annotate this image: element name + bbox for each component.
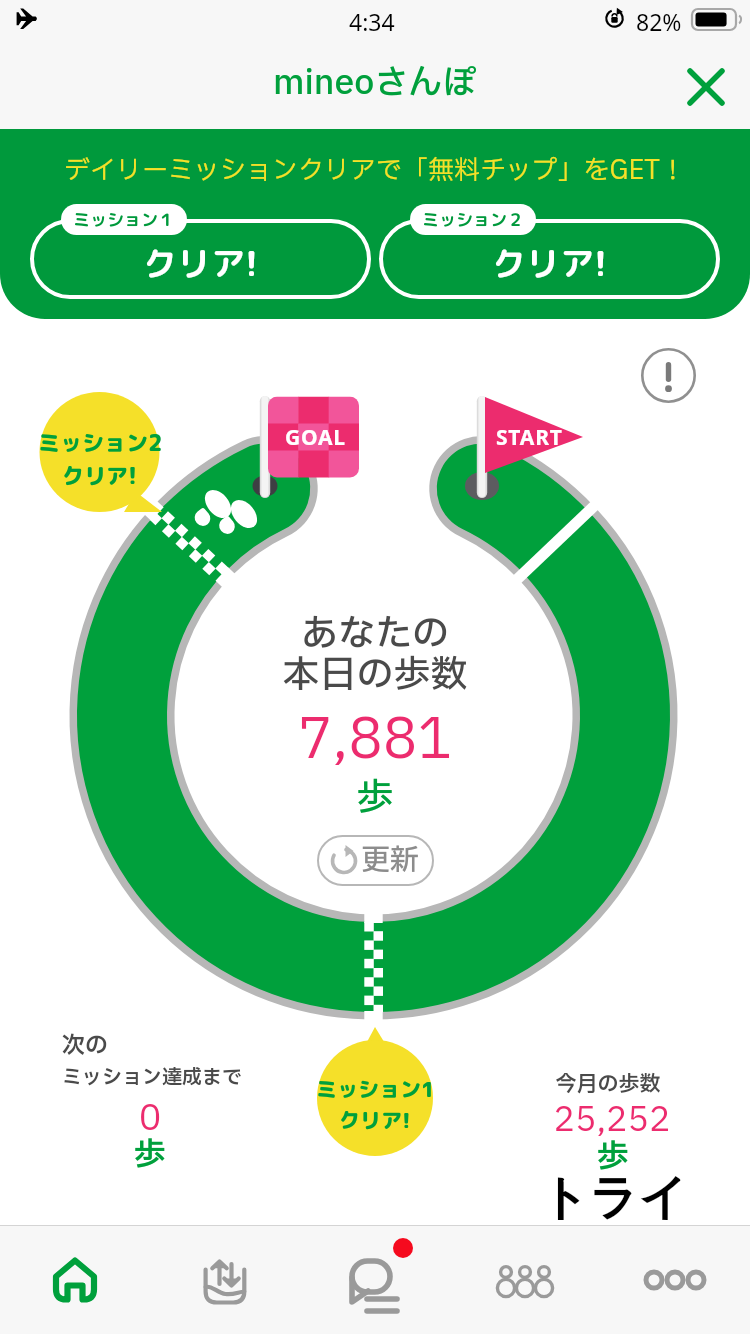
staticText: 本日の歩数	[0, 648, 750, 703]
staticText: クリア!	[492, 239, 607, 286]
staticText: クリア!	[62, 460, 138, 491]
staticText: 歩	[110, 1131, 190, 1179]
button[interactable]: Info	[641, 348, 696, 403]
staticText: ミッション2	[38, 427, 163, 458]
staticText: クリア!	[339, 1105, 411, 1134]
button[interactable]: Data	[150, 1226, 300, 1334]
staticText: mineoさんぽ	[273, 58, 477, 109]
staticText: 0	[110, 1092, 190, 1146]
staticText: 7,881	[0, 700, 750, 782]
button[interactable]: More	[600, 1226, 750, 1334]
staticText: あなたの	[0, 607, 750, 662]
staticText: 更新	[361, 839, 420, 882]
button[interactable]: クリア!	[379, 219, 720, 299]
staticText: ミッション２	[422, 208, 524, 232]
staticText: GOAL	[285, 423, 346, 452]
staticText: 歩	[552, 1133, 674, 1181]
button[interactable]: Community	[450, 1226, 600, 1334]
staticText: 歩	[0, 771, 750, 826]
button[interactable]: Home	[0, 1226, 150, 1334]
staticText: 82%	[636, 6, 682, 37]
button[interactable]: Close	[680, 61, 732, 113]
button[interactable]: Chat	[300, 1226, 450, 1334]
staticText: デイリーミッションクリアで「無料チップ」をGET！	[64, 151, 686, 190]
staticText: ミッション1	[316, 1074, 435, 1103]
staticText: クリア!	[143, 239, 258, 286]
staticText: トライ	[540, 1168, 688, 1228]
staticText: ミッション達成まで	[62, 1063, 242, 1093]
staticText: 次の	[62, 1029, 108, 1063]
button[interactable]: 更新	[317, 835, 434, 886]
button[interactable]: クリア!	[30, 219, 371, 299]
staticText: ミッション１	[73, 208, 175, 232]
staticText: 25,252	[551, 1095, 673, 1146]
staticText: 今月の歩数	[547, 1069, 669, 1100]
staticText: START	[496, 423, 563, 452]
staticText: 4:34	[349, 6, 395, 37]
